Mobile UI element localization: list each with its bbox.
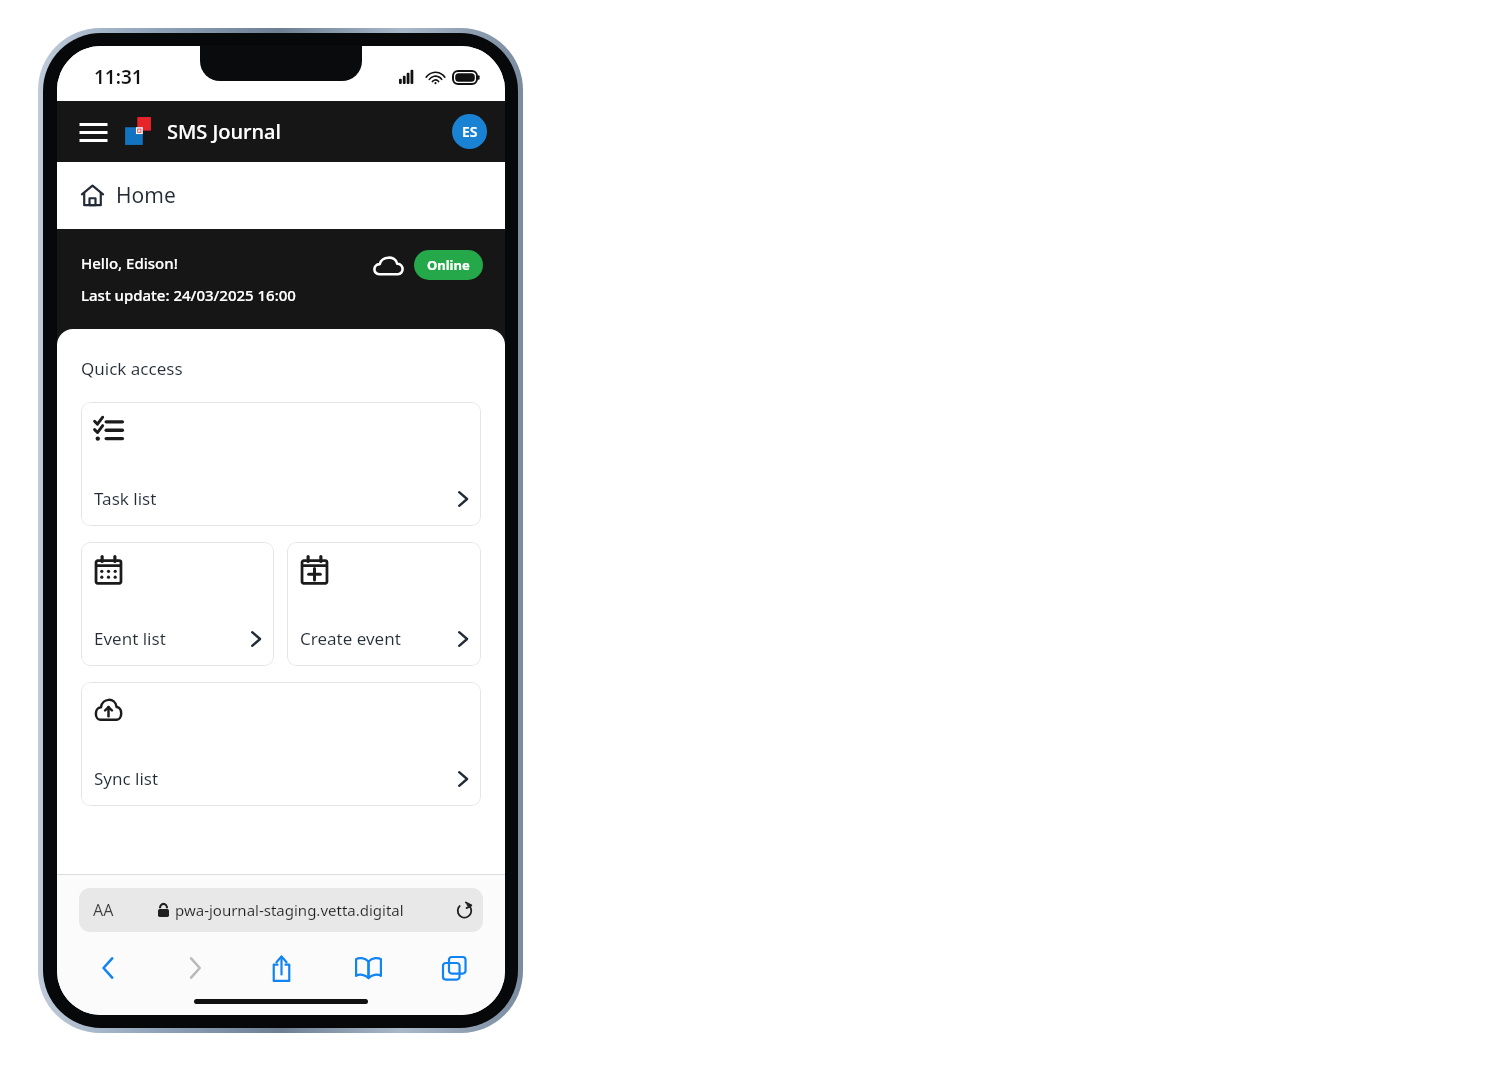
- staticText: Online: [427, 256, 470, 274]
- staticText: Sync list: [94, 767, 159, 790]
- button[interactable]: Open menu: [73, 112, 113, 152]
- button[interactable]: Forward: [172, 947, 218, 989]
- button[interactable]: Share: [258, 947, 304, 989]
- button[interactable]: Online: [414, 250, 483, 280]
- staticText: Task list: [94, 487, 157, 510]
- button[interactable]: AA: [79, 888, 483, 932]
- staticText: ES: [462, 122, 478, 141]
- staticText: Last update: 24/03/2025 16:00: [81, 285, 296, 305]
- button[interactable]: ES: [452, 114, 487, 149]
- staticText: AA: [93, 899, 114, 921]
- button[interactable]: Tabs: [431, 947, 477, 989]
- staticText: Create event: [300, 627, 401, 650]
- button[interactable]: Bookmarks: [345, 947, 391, 989]
- button[interactable]: Create event: [287, 542, 481, 666]
- staticText: Event list: [94, 627, 166, 650]
- button[interactable]: Event list: [81, 542, 274, 666]
- staticText: pwa-journal-staging.vetta.digital: [175, 900, 404, 920]
- button[interactable]: Sync list: [81, 682, 481, 806]
- button[interactable]: Back: [85, 947, 131, 989]
- staticText: 11:31: [94, 64, 143, 90]
- button[interactable]: Home: [57, 162, 505, 229]
- button[interactable]: Task list: [81, 402, 481, 526]
- staticText: Hello, Edison!: [81, 253, 178, 273]
- staticText: Home: [116, 181, 176, 210]
- button[interactable]: Reload page: [449, 895, 479, 925]
- staticText: SMS Journal: [167, 118, 281, 145]
- staticText: Quick access: [81, 357, 183, 380]
